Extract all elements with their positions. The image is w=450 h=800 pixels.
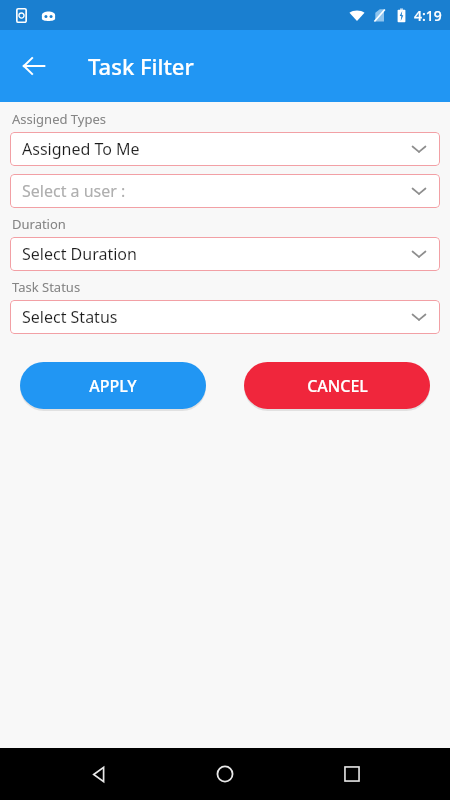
staticText: Select a user : bbox=[22, 180, 410, 202]
staticText: Task Status bbox=[12, 278, 81, 296]
button[interactable]: Home bbox=[196, 748, 254, 800]
staticText: Duration bbox=[12, 215, 66, 233]
staticText: 4:19 bbox=[414, 6, 442, 25]
button[interactable]: Back bbox=[69, 748, 127, 800]
staticText: Assigned Types bbox=[12, 110, 107, 128]
button[interactable]: Recent apps bbox=[323, 748, 381, 800]
staticText: Assigned To Me bbox=[22, 138, 410, 160]
button[interactable]: CANCEL bbox=[244, 362, 430, 409]
button[interactable]: Select Status bbox=[10, 300, 440, 334]
staticText: Select Status bbox=[22, 306, 410, 328]
button[interactable]: APPLY bbox=[20, 362, 206, 409]
staticText: APPLY bbox=[89, 375, 137, 397]
button[interactable]: Select Duration bbox=[10, 237, 440, 271]
button[interactable]: Select a user : bbox=[10, 174, 440, 208]
staticText: CANCEL bbox=[307, 375, 368, 397]
button[interactable]: Assigned To Me bbox=[10, 132, 440, 166]
staticText: Task Filter bbox=[88, 51, 194, 81]
button[interactable]: Back bbox=[10, 42, 58, 90]
staticText: Select Duration bbox=[22, 243, 410, 265]
